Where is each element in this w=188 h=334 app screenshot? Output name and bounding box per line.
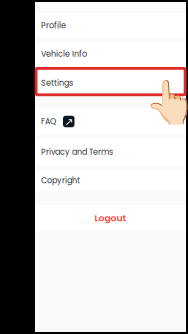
button[interactable]: Vehicle Info xyxy=(35,42,186,66)
staticText: Logout xyxy=(94,211,126,225)
staticText: Settings xyxy=(41,77,73,89)
staticText: Copyright xyxy=(41,175,80,186)
button[interactable]: Logout xyxy=(35,205,186,231)
staticText: Privacy and Terms xyxy=(41,146,113,158)
button[interactable]: FAQ xyxy=(35,108,186,135)
staticText: FAQ xyxy=(41,116,56,127)
staticText: ↗ xyxy=(64,115,73,127)
button[interactable]: Settings xyxy=(35,70,186,96)
staticText: Vehicle Info xyxy=(41,48,87,60)
button[interactable]: Copyright xyxy=(35,170,186,191)
button[interactable]: Privacy and Terms xyxy=(35,138,186,166)
staticText: 👆🏻 xyxy=(144,78,188,127)
button[interactable]: Profile xyxy=(35,13,186,38)
staticText: Profile xyxy=(41,20,66,31)
